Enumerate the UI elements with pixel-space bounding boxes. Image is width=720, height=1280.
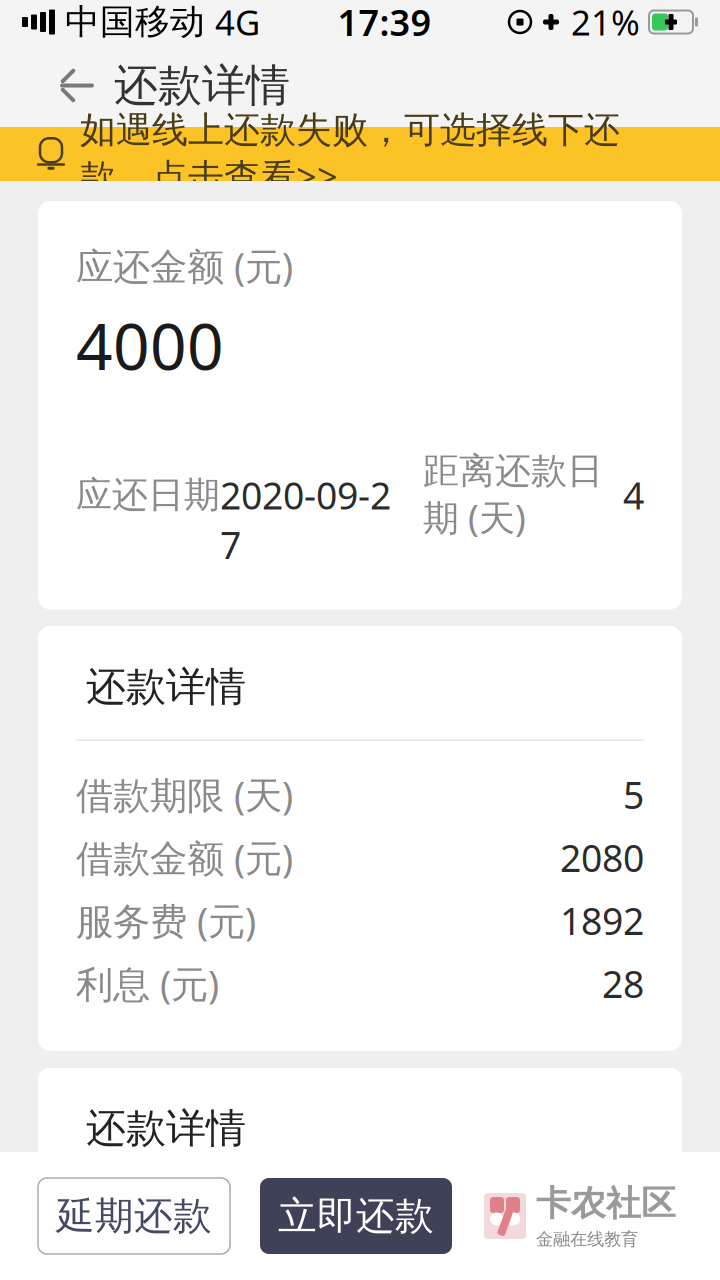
staticText: 0 xyxy=(623,1211,644,1261)
staticText: 还款详情 xyxy=(86,1104,246,1153)
button[interactable]: 返回 还款详情 xyxy=(36,46,312,124)
staticText: 卡农社区 xyxy=(536,1182,676,1225)
staticText: 立即还款 xyxy=(278,1192,434,1240)
staticText: 17:39 xyxy=(337,0,431,46)
staticText: 还款详情 xyxy=(114,58,290,112)
staticText: 28 xyxy=(602,959,644,1008)
staticText: 4 xyxy=(603,470,644,520)
staticText: 21% xyxy=(571,0,640,45)
staticText: 应还日期 xyxy=(76,473,220,517)
staticText: 金融在线教育 xyxy=(536,1229,638,1250)
staticText: 应还金额 (元) xyxy=(76,241,293,291)
staticText: 还款详情 xyxy=(86,662,246,711)
staticText: 利息 (元) xyxy=(76,959,219,1008)
button[interactable]: 延期还款 xyxy=(38,1178,230,1254)
staticText: 如遇线上还款失败，可选择线下还款。点击查看>> xyxy=(80,108,620,200)
staticText: 距离还款日期 (天) xyxy=(423,449,603,541)
staticText: 延期还款 xyxy=(56,1192,212,1240)
staticText: 借款期限 (天) xyxy=(76,770,293,819)
button[interactable]: 立即还款 xyxy=(260,1178,452,1254)
staticText: 1892 xyxy=(560,896,644,945)
staticText: 2020-09-27 xyxy=(220,421,391,569)
staticText: 借款金额 (元) xyxy=(76,833,293,882)
staticText: 罚息 (元) xyxy=(76,1211,219,1261)
staticText: 4G xyxy=(215,0,260,45)
staticText: 服务费 (元) xyxy=(76,896,256,945)
staticText: 2080 xyxy=(560,833,644,882)
staticText: 中国移动 xyxy=(65,1,205,43)
button[interactable]: 如遇线上还款失败，可选择线下还款。点击查看>> xyxy=(0,127,720,181)
staticText: 4000 xyxy=(76,303,224,388)
staticText: 5 xyxy=(623,770,644,819)
